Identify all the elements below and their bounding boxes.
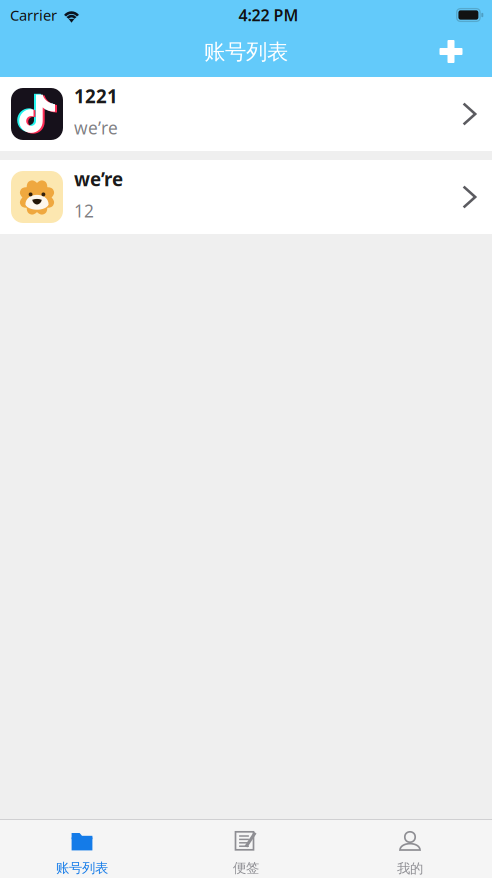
staticText: we’re	[74, 116, 118, 139]
staticText: Carrier	[10, 5, 57, 25]
staticText: 账号列表	[204, 39, 288, 65]
button[interactable]: Add account	[435, 35, 467, 67]
button[interactable]: we’re	[0, 160, 492, 234]
staticText: 便签	[233, 860, 259, 876]
button[interactable]: 便签	[164, 819, 328, 878]
button[interactable]: 我的	[328, 819, 492, 878]
staticText: 1221	[74, 84, 118, 108]
button[interactable]: 账号列表	[0, 819, 164, 878]
staticText: 我的	[397, 860, 423, 877]
staticText: we’re	[74, 167, 123, 191]
staticText: 账号列表	[56, 860, 108, 876]
staticText: 12	[74, 199, 94, 222]
staticText: 4:22 PM	[238, 4, 298, 26]
button[interactable]: 1221	[0, 77, 492, 151]
